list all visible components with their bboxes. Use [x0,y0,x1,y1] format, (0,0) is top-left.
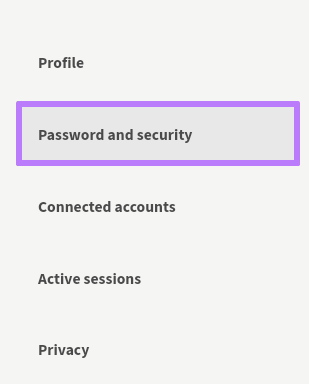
staticText: Active sessions [38,268,142,290]
staticText: Profile [38,52,85,74]
button[interactable]: Profile [0,27,309,99]
staticText: Connected accounts [38,196,176,218]
button[interactable]: Connected accounts [0,171,309,243]
button[interactable]: Active sessions [0,243,309,315]
button[interactable]: Privacy [0,315,309,384]
button[interactable]: Password and security [0,99,309,171]
staticText: Password and security [38,124,193,146]
staticText: Privacy [38,339,90,361]
